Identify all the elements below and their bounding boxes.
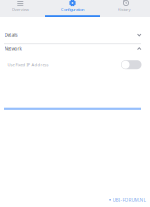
staticText: Use Fixed IP Address bbox=[7, 62, 48, 67]
staticText: Overview bbox=[12, 7, 29, 12]
staticText: History bbox=[117, 7, 130, 12]
staticText: UBI-FORUM.NL bbox=[112, 197, 145, 203]
staticText: Details bbox=[5, 32, 18, 38]
button[interactable]: Overview bbox=[0, 0, 45, 17]
button[interactable]: History bbox=[100, 0, 150, 17]
staticText: Configuration bbox=[61, 7, 84, 12]
button[interactable]: Details bbox=[0, 17, 150, 43]
staticText: Network bbox=[5, 46, 22, 52]
button[interactable]: Network bbox=[0, 44, 150, 57]
button[interactable]: Use Fixed IP Address bbox=[121, 57, 141, 72]
button[interactable]: Configuration bbox=[45, 0, 100, 17]
